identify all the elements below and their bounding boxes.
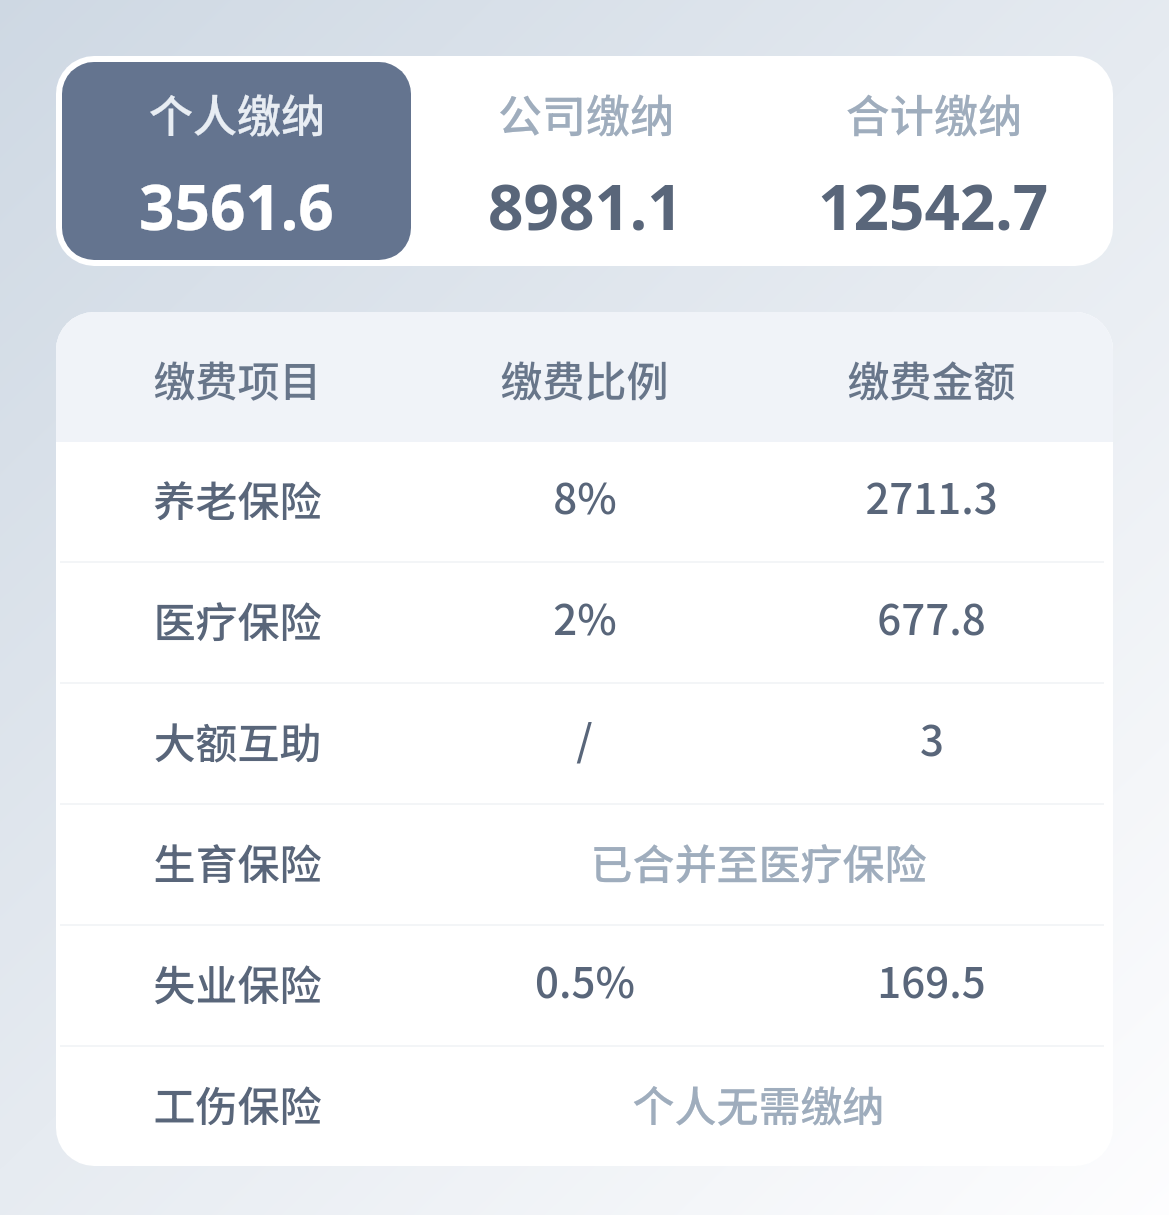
staticText: 677.8 (877, 586, 986, 647)
staticText: 生育保险 (153, 831, 322, 892)
staticText: 8981.1 (488, 164, 683, 248)
staticText: 大额互助 (153, 710, 322, 771)
button[interactable]: 个人缴纳 3561.6 (62, 62, 411, 260)
staticText: 3561.6 (139, 164, 334, 248)
button[interactable]: 生育保险 (56, 805, 1113, 924)
staticText: / (576, 707, 593, 768)
staticText: 已合并至医疗保险 (590, 831, 927, 892)
staticText: 3 (920, 707, 944, 768)
staticText: 2711.3 (865, 465, 998, 526)
staticText: 个人缴纳 (149, 81, 325, 145)
button[interactable]: 合计缴纳 12542.7 (759, 62, 1107, 260)
staticText: 2% (553, 586, 617, 647)
staticText: 0.5% (535, 949, 635, 1010)
button[interactable]: 养老保险 (56, 442, 1113, 561)
staticText: 缴费金额 (847, 348, 1016, 409)
staticText: 医疗保险 (153, 589, 322, 650)
button[interactable]: 公司缴纳 8981.1 (411, 62, 759, 260)
button[interactable]: 大额互助 (56, 684, 1113, 803)
staticText: 工伤保险 (153, 1073, 322, 1134)
staticText: 公司缴纳 (498, 81, 674, 145)
button[interactable]: 失业保险 (56, 926, 1113, 1045)
staticText: 缴费项目 (153, 348, 322, 409)
staticText: 8% (553, 465, 617, 526)
staticText: 合计缴纳 (846, 81, 1022, 145)
staticText: 169.5 (877, 949, 986, 1010)
staticText: 失业保险 (153, 952, 322, 1013)
staticText: 个人无需缴纳 (632, 1073, 885, 1134)
staticText: 12542.7 (818, 164, 1049, 248)
staticText: 养老保险 (153, 468, 322, 529)
button[interactable]: 医疗保险 (56, 563, 1113, 682)
button[interactable]: 工伤保险 (56, 1047, 1113, 1166)
staticText: 缴费比例 (500, 348, 669, 409)
